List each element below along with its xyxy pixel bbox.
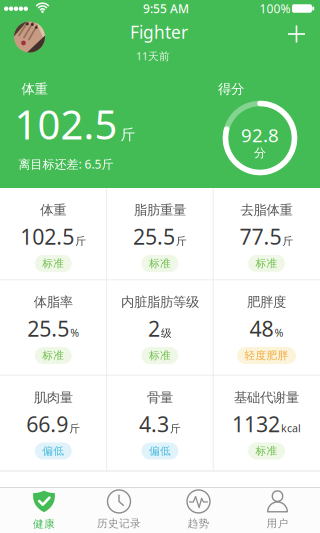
staticText: 11天前 (136, 49, 170, 63)
staticText: 1132 (232, 410, 280, 438)
staticText: 偏低 (149, 444, 171, 457)
staticText: 体重 (21, 81, 47, 97)
staticText: 离目标还差: 6.5斤 (18, 156, 113, 172)
staticText: 级 (161, 327, 172, 340)
staticText: 肥胖度 (247, 294, 286, 310)
staticText: 25.5 (27, 314, 69, 343)
staticText: 偏低 (42, 444, 64, 457)
button[interactable]: 脂肪重量 (107, 188, 213, 280)
button[interactable]: 肥胖度 (214, 280, 320, 375)
staticText: 斤 (75, 235, 86, 248)
staticText: Fighter (130, 20, 188, 43)
staticText: 斤 (176, 235, 187, 248)
staticText: 2 (148, 314, 160, 343)
staticText: 体脂率 (34, 294, 73, 310)
staticText: 基础代谢量 (234, 389, 299, 406)
staticText: 斤 (170, 422, 181, 435)
staticText: 分 (254, 146, 266, 160)
staticText: 100% (259, 0, 290, 16)
button[interactable]: 体脂率 (0, 280, 106, 375)
staticText: 得分 (218, 81, 244, 97)
staticText: 9:55 AM (143, 0, 189, 16)
button[interactable]: 趋势 (162, 488, 234, 532)
staticText: 4.3 (139, 410, 169, 438)
staticText: 92.8 (241, 123, 279, 147)
button[interactable]: 用户 (241, 488, 313, 532)
staticText: 斤 (283, 235, 294, 248)
staticText: 77.5 (240, 222, 282, 251)
staticText: 102.5 (20, 222, 74, 251)
staticText: 趋势 (187, 517, 209, 530)
staticText: 标准 (42, 257, 64, 270)
staticText: 标准 (42, 349, 64, 362)
staticText: 102.5 (14, 97, 117, 150)
staticText: 脂肪重量 (134, 202, 186, 218)
staticText: 轻度肥胖 (245, 349, 289, 362)
button[interactable]: 内脏脂肪等级 (107, 280, 213, 375)
staticText: 用户 (266, 517, 288, 530)
staticText: 骨量 (147, 389, 173, 406)
staticText: 标准 (149, 349, 171, 362)
staticText: 标准 (256, 444, 278, 457)
staticText: 历史记录 (97, 517, 141, 530)
button[interactable]: 基础代谢量 (214, 375, 320, 471)
button[interactable]: 添加 (281, 19, 311, 49)
staticText: 标准 (256, 257, 278, 270)
button[interactable]: 体重 (0, 188, 106, 280)
button[interactable]: 肌肉量 (0, 375, 106, 471)
staticText: 内脏脂肪等级 (121, 294, 199, 310)
staticText: % (275, 326, 284, 340)
staticText: 48 (250, 314, 274, 343)
staticText: 25.5 (133, 222, 175, 251)
staticText: kcal (281, 421, 301, 435)
staticText: 斤 (120, 126, 135, 144)
staticText: 体重 (40, 202, 66, 218)
button[interactable]: 去脂体重 (214, 188, 320, 280)
button[interactable]: 历史记录 (80, 488, 158, 532)
staticText: % (70, 326, 79, 340)
button[interactable]: 骨量 (107, 375, 213, 471)
staticText: 斤 (69, 422, 80, 435)
staticText: 66.9 (26, 410, 68, 438)
staticText: 肌肉量 (34, 389, 73, 406)
button[interactable]: 健康 (8, 488, 80, 532)
staticText: 去脂体重 (241, 202, 293, 218)
staticText: 健康 (33, 517, 55, 530)
button[interactable]: 个人资料 (14, 21, 45, 52)
staticText: 标准 (149, 257, 171, 270)
